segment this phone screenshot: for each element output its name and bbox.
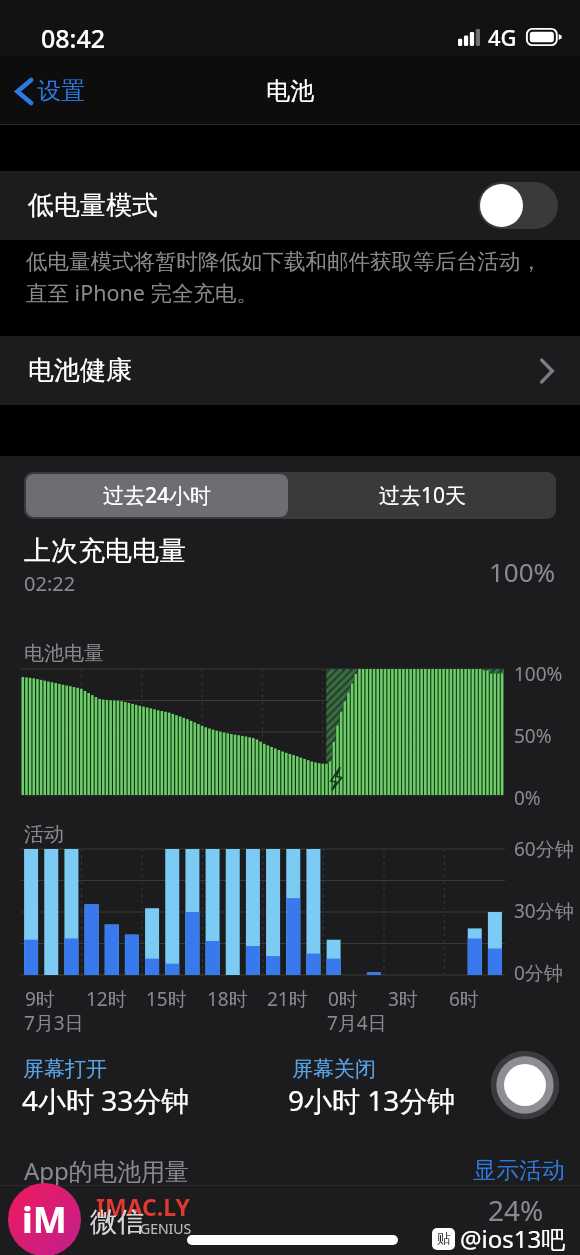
staticText: 4G — [488, 22, 517, 52]
staticText: 50% — [514, 723, 552, 749]
staticText: 7月4日 — [327, 1010, 387, 1036]
staticText: 100% — [489, 554, 556, 589]
staticText: 0分钟 — [514, 960, 563, 986]
staticText: 9时 — [25, 986, 55, 1012]
staticText: 12时 — [86, 986, 127, 1012]
button[interactable]: AssistiveTouch — [490, 1050, 560, 1120]
staticText: App的电池用量 — [24, 1154, 189, 1187]
staticText: 100% — [514, 661, 563, 687]
staticText: 微信 — [90, 1205, 144, 1239]
staticText: @ios13吧 — [460, 1222, 566, 1255]
staticText: 4小时 33分钟 — [22, 1081, 190, 1119]
staticText: 贴 — [437, 1230, 451, 1248]
staticText: 电池健康 — [28, 354, 132, 387]
staticText: 显示活动 — [473, 1156, 565, 1185]
staticText: 屏幕关闭 — [292, 1056, 376, 1082]
button[interactable]: 低电量模式 — [0, 171, 580, 240]
button[interactable]: 显示活动 — [455, 1150, 580, 1191]
staticText: 02:22 — [24, 570, 76, 597]
staticText: 上次充电电量 — [24, 534, 186, 568]
staticText: 设置 — [37, 76, 85, 106]
staticText: 15时 — [146, 986, 187, 1012]
staticText: 0时 — [328, 986, 358, 1012]
staticText: 低电量模式将暂时降低如下载和邮件获取等后台活动， 直至 iPhone 完全充电。 — [26, 248, 542, 308]
button[interactable]: Low Power Mode toggle — [478, 182, 558, 229]
button[interactable]: 过去10天 — [290, 472, 556, 519]
staticText: 3时 — [388, 986, 418, 1012]
staticText: 60分钟 — [514, 836, 574, 862]
staticText: 7月3日 — [24, 1010, 84, 1036]
staticText: 9小时 13分钟 — [288, 1081, 456, 1119]
staticText: 屏幕打开 — [23, 1056, 107, 1082]
staticText: 0% — [514, 785, 541, 811]
staticText: 过去10天 — [379, 481, 467, 510]
staticText: iM — [22, 1195, 67, 1244]
staticText: 6时 — [449, 986, 479, 1012]
staticText: 电池 — [266, 76, 314, 106]
button[interactable]: 设置 — [0, 68, 97, 114]
staticText: 18时 — [207, 986, 248, 1012]
button[interactable]: 电池健康 — [0, 336, 580, 405]
staticText: 过去24小时 — [103, 481, 212, 510]
staticText: 08:42 — [41, 21, 106, 55]
other: Battery Health — [540, 358, 554, 384]
button[interactable]: 过去24小时 — [26, 474, 288, 517]
staticText: 电池电量 — [24, 641, 104, 666]
staticText: GENIUS — [140, 1219, 192, 1238]
staticText: 30分钟 — [514, 898, 574, 924]
staticText: 活动 — [24, 822, 64, 847]
staticText: 21时 — [267, 986, 308, 1012]
staticText: IMAC.LY — [96, 1191, 190, 1222]
staticText: 低电量模式 — [28, 189, 158, 222]
staticText: 24% — [488, 1191, 544, 1229]
